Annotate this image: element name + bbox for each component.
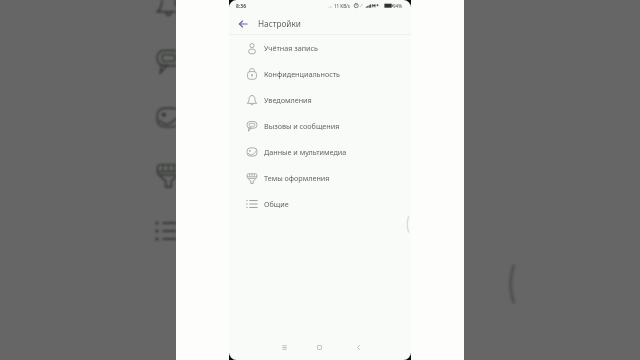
button[interactable]: Данные и мультимедиа xyxy=(229,139,411,165)
button[interactable]: Уведомления xyxy=(229,87,411,113)
staticText: Вызовы и сообщения xyxy=(264,121,340,131)
staticText: Общие xyxy=(264,199,289,209)
staticText: 11 KB/s xyxy=(334,3,351,9)
button[interactable]: Общие xyxy=(229,191,411,217)
button[interactable]: Back xyxy=(347,336,369,358)
staticText: Учётная запись xyxy=(264,43,318,53)
staticText: Конфиденциальность xyxy=(264,69,341,79)
staticText: 8:36 xyxy=(236,3,246,10)
button[interactable]: Back xyxy=(232,13,253,34)
button[interactable]: Учётная запись xyxy=(229,35,411,61)
staticText: Данные и мультимедиа xyxy=(264,147,347,157)
button[interactable]: Home xyxy=(308,336,330,358)
staticText: 94% xyxy=(393,3,402,9)
staticText: Темы оформления xyxy=(264,173,330,183)
button[interactable]: Темы оформления xyxy=(229,165,411,191)
button[interactable]: Конфиденциальность xyxy=(229,61,411,87)
staticText: Настройки xyxy=(258,18,301,29)
staticText: Уведомления xyxy=(264,95,312,105)
button[interactable]: Recent apps xyxy=(273,336,295,358)
button[interactable]: Вызовы и сообщения xyxy=(229,113,411,139)
